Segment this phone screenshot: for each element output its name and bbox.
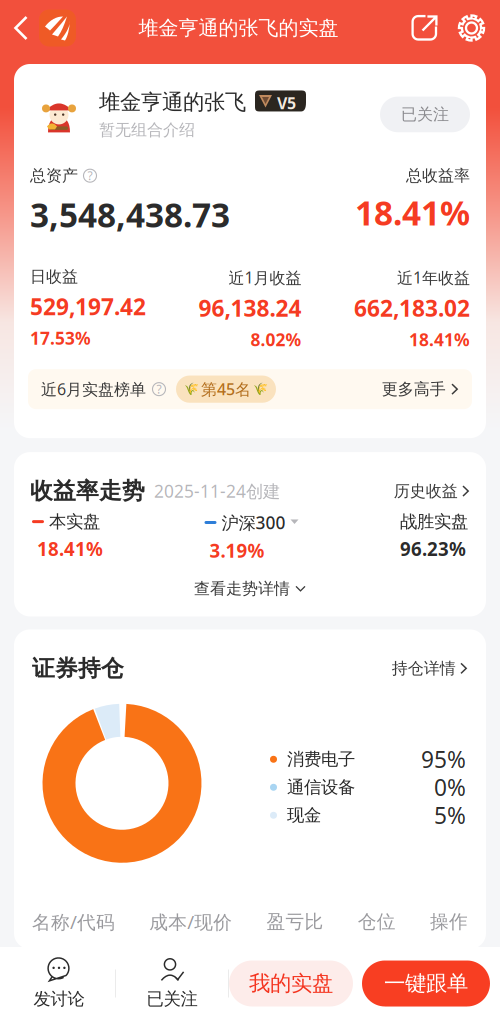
staticText: 通信设备 bbox=[287, 777, 355, 798]
button[interactable]: 已关注 bbox=[380, 97, 470, 132]
staticText: 操作 bbox=[430, 910, 468, 933]
button[interactable]: Back bbox=[0, 5, 39, 51]
button[interactable]: Settings bbox=[448, 3, 500, 52]
staticText: 17.53% bbox=[30, 326, 91, 349]
staticText: 历史收益 bbox=[394, 481, 458, 501]
staticText: 已关注 bbox=[401, 105, 449, 124]
staticText: 沪深300 bbox=[221, 511, 285, 534]
staticText: 🌾 bbox=[253, 382, 268, 396]
staticText: ? bbox=[87, 168, 92, 184]
staticText: 3,548,438.73 bbox=[30, 192, 230, 237]
staticText: 一键跟单 bbox=[384, 970, 468, 997]
staticText: 成本/现价 bbox=[149, 909, 232, 934]
button[interactable]: 历史收益 bbox=[394, 481, 470, 501]
staticText: 消费电子 bbox=[287, 749, 355, 770]
staticText: 95% bbox=[421, 744, 466, 774]
staticText: 🌾 bbox=[184, 382, 199, 396]
staticText: 近1月收益 bbox=[228, 267, 301, 288]
staticText: 18.41% bbox=[37, 536, 103, 561]
staticText: 堆金亨通的张飞的实盘 bbox=[138, 16, 338, 40]
staticText: 8.02% bbox=[250, 328, 301, 351]
staticText: 暂无组合介绍 bbox=[99, 120, 195, 140]
staticText: 近6月实盘榜单 bbox=[41, 378, 146, 400]
button[interactable]: 查看走势详情 bbox=[174, 569, 326, 608]
staticText: 18.41% bbox=[409, 328, 470, 351]
staticText: 5% bbox=[434, 800, 466, 830]
staticText: 662,183.02 bbox=[354, 293, 470, 323]
staticText: 日收益 bbox=[30, 267, 78, 286]
staticText: 529,197.42 bbox=[30, 291, 146, 321]
staticText: 持仓详情 bbox=[392, 658, 456, 678]
button[interactable]: Share bbox=[401, 3, 448, 52]
staticText: 3.19% bbox=[209, 538, 264, 563]
staticText: 查看走势详情 bbox=[194, 579, 290, 598]
staticText: 总资产 bbox=[30, 166, 78, 186]
staticText: 18.41% bbox=[355, 190, 470, 235]
staticText: 0% bbox=[434, 772, 466, 802]
button[interactable]: 近6月实盘榜单 bbox=[28, 369, 472, 409]
staticText: ? bbox=[156, 381, 161, 397]
staticText: 名称/代码 bbox=[32, 909, 115, 934]
staticText: 盈亏比 bbox=[266, 910, 323, 933]
staticText: 更多高手 bbox=[382, 379, 446, 399]
staticText: 近1年收益 bbox=[397, 267, 470, 288]
staticText: 仓位 bbox=[358, 910, 396, 933]
staticText: 2025-11-24创建 bbox=[154, 480, 280, 503]
button[interactable]: 持仓详情 bbox=[392, 658, 468, 678]
button[interactable]: 已关注 bbox=[116, 947, 228, 1020]
staticText: 96,138.24 bbox=[198, 293, 301, 323]
staticText: 现金 bbox=[287, 805, 321, 826]
staticText: 96.23% bbox=[400, 536, 466, 561]
staticText: 战胜实盘 bbox=[400, 511, 468, 532]
staticText: 发讨论 bbox=[33, 988, 84, 1010]
button[interactable]: 我的实盘 bbox=[229, 960, 353, 1006]
staticText: 我的实盘 bbox=[249, 970, 333, 997]
staticText: 第45名 bbox=[201, 378, 251, 400]
staticText: 堆金亨通的张飞 bbox=[99, 89, 246, 115]
staticText: V5 bbox=[277, 92, 296, 114]
button[interactable]: 一键跟单 bbox=[362, 960, 490, 1006]
staticText: 已关注 bbox=[146, 988, 197, 1010]
staticText: 本实盘 bbox=[49, 511, 100, 532]
staticText: 总收益率 bbox=[406, 166, 470, 186]
button[interactable]: 发讨论 bbox=[3, 947, 115, 1020]
staticText: 证券持仓 bbox=[32, 654, 124, 682]
staticText: 收益率走势 bbox=[30, 477, 145, 505]
